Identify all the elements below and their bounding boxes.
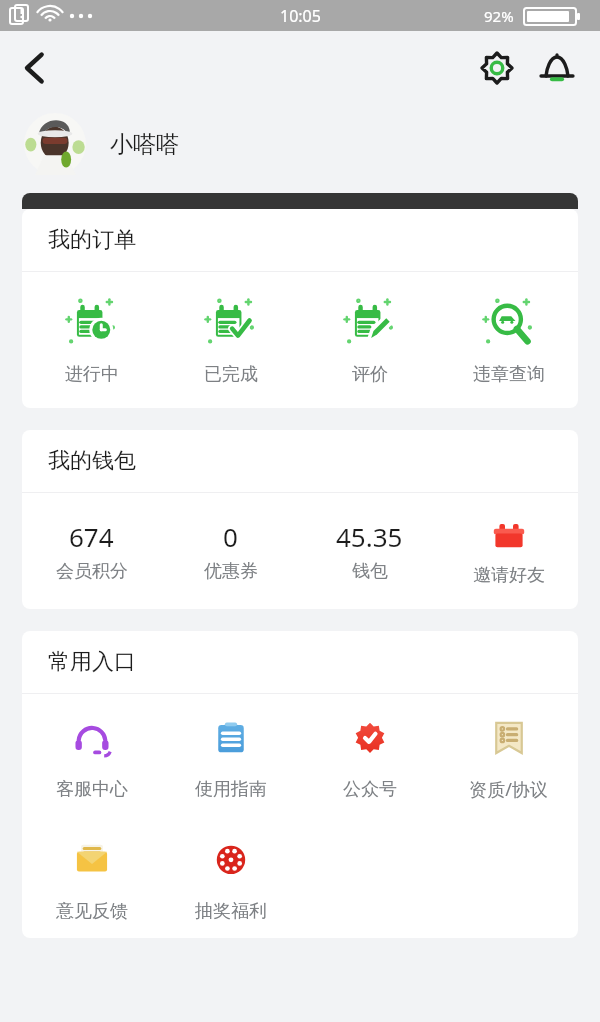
button[interactable]: 已完成	[161, 272, 300, 408]
button[interactable]: 客服中心	[22, 694, 161, 816]
staticText: 小嗒嗒	[110, 130, 179, 159]
button[interactable]: 违章查询	[439, 272, 578, 408]
staticText: 钱包	[352, 560, 388, 583]
button[interactable]: 进行中	[22, 272, 161, 408]
staticText: 意见反馈	[56, 900, 128, 923]
button[interactable]: 资质/协议	[439, 694, 578, 816]
button[interactable]: Back	[8, 40, 64, 96]
button[interactable]: Notifications	[532, 43, 582, 93]
staticText: 违章查询	[473, 363, 545, 386]
button[interactable]: 评价	[300, 272, 439, 408]
staticText: 常用入口	[48, 648, 136, 676]
staticText: 92%	[484, 6, 514, 26]
staticText: 抽奖福利	[195, 900, 267, 923]
button[interactable]: 意见反馈	[22, 816, 161, 938]
staticText: 进行中	[65, 363, 119, 386]
staticText: 我的钱包	[48, 447, 136, 475]
button[interactable]: 0	[161, 493, 300, 609]
staticText: 公众号	[343, 778, 397, 801]
button[interactable]: 使用指南	[161, 694, 300, 816]
button[interactable]: 674	[22, 493, 161, 609]
button[interactable]: Settings	[472, 43, 522, 93]
staticText: 优惠券	[204, 560, 258, 583]
button[interactable]: 45.35	[300, 493, 439, 609]
staticText: 我的订单	[48, 226, 136, 254]
staticText: 10:05	[280, 5, 321, 27]
staticText: 0	[223, 519, 238, 554]
staticText: 已完成	[204, 363, 258, 386]
button[interactable]: 小嗒嗒	[0, 105, 600, 183]
staticText: 资质/协议	[469, 777, 548, 802]
staticText: 邀请好友	[473, 564, 545, 587]
staticText: 会员积分	[56, 560, 128, 583]
button[interactable]: 公众号	[300, 694, 439, 816]
staticText: 674	[69, 519, 114, 554]
staticText: 评价	[352, 363, 388, 386]
staticText: 45.35	[336, 519, 403, 554]
button[interactable]: 抽奖福利	[161, 816, 300, 938]
staticText: 使用指南	[195, 778, 267, 801]
staticText: 客服中心	[56, 778, 128, 801]
button[interactable]: 邀请好友	[439, 493, 578, 609]
